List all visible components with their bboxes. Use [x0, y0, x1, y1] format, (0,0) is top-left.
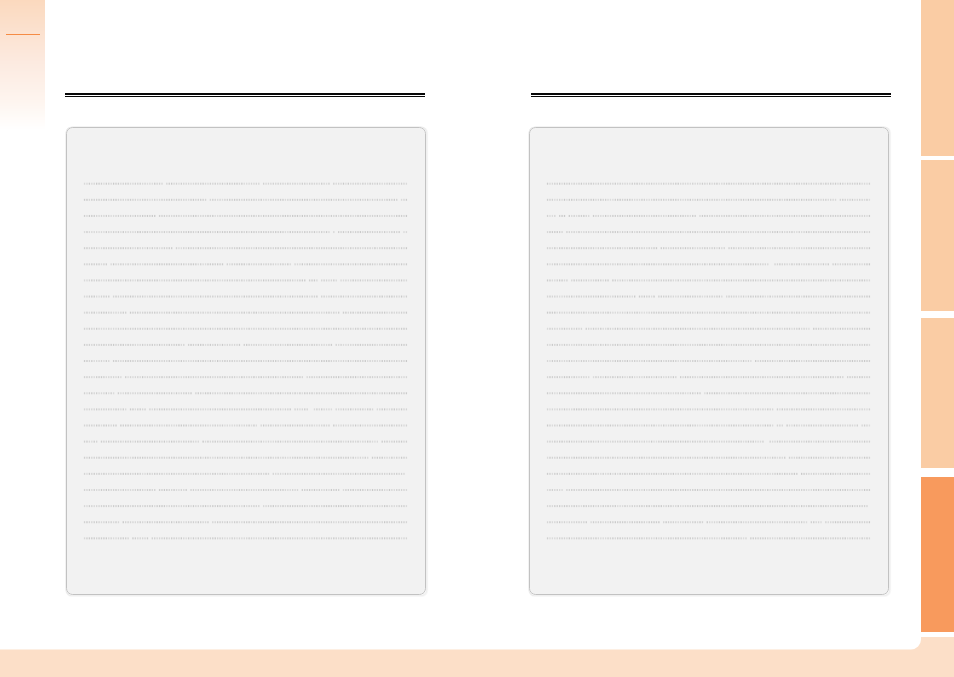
button[interactable]: Document page	[529, 127, 889, 595]
button[interactable]: Document page	[66, 127, 426, 595]
